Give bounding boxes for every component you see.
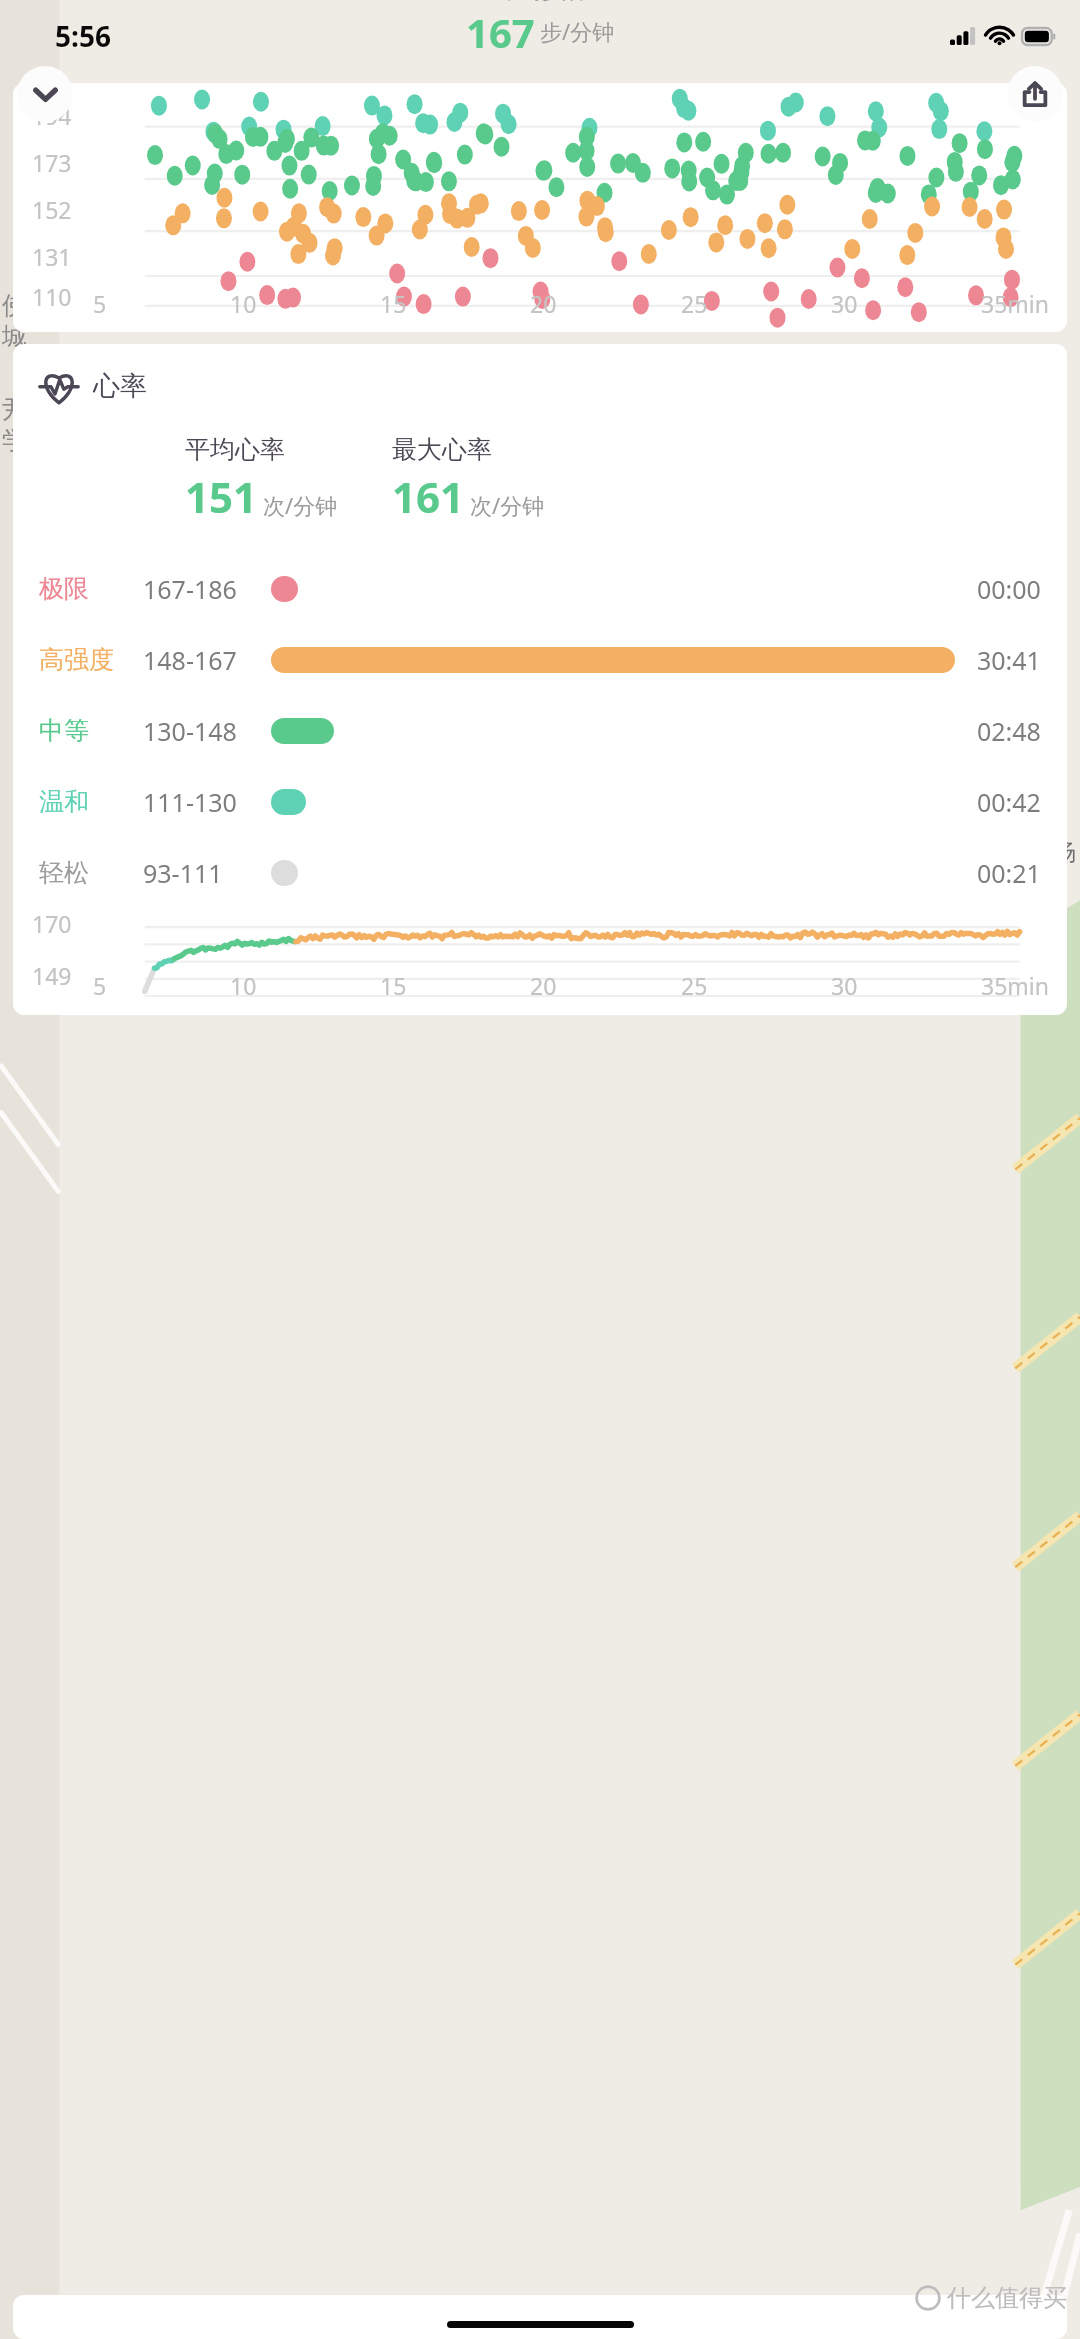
staticText: 佛山市宫大广场 — [915, 838, 1076, 867]
staticText: 城 — [2, 321, 27, 352]
staticText: 心率 — [93, 369, 147, 403]
staticText: 30 — [831, 970, 858, 1001]
staticText: 15 — [380, 288, 407, 319]
staticText: 35min — [981, 970, 1049, 1001]
staticText: 110 — [32, 281, 72, 308]
staticText: 佛山 — [2, 290, 52, 321]
staticText: 温和 — [39, 786, 89, 817]
staticText: 平均心率 — [185, 434, 285, 465]
staticText: 151 — [185, 468, 258, 525]
staticText: 学校 — [2, 425, 52, 456]
staticText: 93-111 — [143, 856, 223, 890]
staticText: 5 — [93, 970, 107, 1001]
staticText: 00:42 — [977, 785, 1041, 819]
staticText: 平均步频 — [499, 0, 583, 4]
staticText: 35min — [981, 288, 1049, 319]
staticText: 什么值得买 — [947, 2283, 1067, 2313]
staticText: 02:48 — [977, 714, 1041, 748]
button[interactable]: Collapse — [17, 66, 73, 122]
staticText: 轻松 — [39, 857, 89, 888]
staticText: 15 — [380, 970, 407, 1001]
staticText: 20 — [530, 288, 557, 319]
staticText: 149 — [32, 960, 72, 991]
button[interactable]: Share — [1007, 66, 1063, 122]
staticText: 161 — [392, 468, 465, 525]
staticText: 148-167 — [143, 643, 237, 677]
staticText: 10 — [230, 288, 257, 319]
button[interactable]: 极限 — [13, 553, 1067, 624]
staticText: 30:41 — [977, 643, 1041, 677]
button[interactable]: 温和 — [13, 766, 1067, 837]
staticText: 5 — [93, 288, 107, 319]
button[interactable]: 194 — [13, 83, 1067, 332]
staticText: 173 — [32, 147, 72, 178]
staticText: 167 — [466, 5, 535, 50]
staticText: 152 — [32, 194, 72, 225]
staticText: 30 — [831, 288, 858, 319]
staticText: 步/分钟 — [540, 16, 615, 46]
staticText: 次/分钟 — [470, 490, 545, 520]
staticText: 00:21 — [977, 856, 1041, 890]
button[interactable]: 心率 — [13, 344, 1067, 1015]
button[interactable]: 中等 — [13, 695, 1067, 766]
staticText: 高强度 — [39, 644, 114, 675]
staticText: 25 — [681, 288, 708, 319]
staticText: 131 — [32, 241, 72, 272]
staticText: 最大心率 — [392, 434, 492, 465]
staticText: 20 — [530, 970, 557, 1001]
staticText: 170 — [32, 908, 72, 939]
staticText: 次/分钟 — [263, 490, 338, 520]
staticText: 00:00 — [977, 572, 1041, 606]
staticText: 25 — [681, 970, 708, 1001]
staticText: 极限 — [39, 573, 89, 604]
staticText: 111-130 — [143, 785, 237, 819]
button[interactable]: 轻松 — [13, 837, 1067, 908]
button[interactable]: 高强度 — [13, 624, 1067, 695]
staticText: 10 — [230, 970, 257, 1001]
staticText: 194 — [32, 100, 72, 131]
staticText: 167-186 — [143, 572, 237, 606]
staticText: 中等 — [39, 715, 89, 746]
staticText: 5:56 — [55, 17, 111, 55]
staticText: 130-148 — [143, 714, 237, 748]
staticText: 尹虹 — [2, 394, 52, 425]
